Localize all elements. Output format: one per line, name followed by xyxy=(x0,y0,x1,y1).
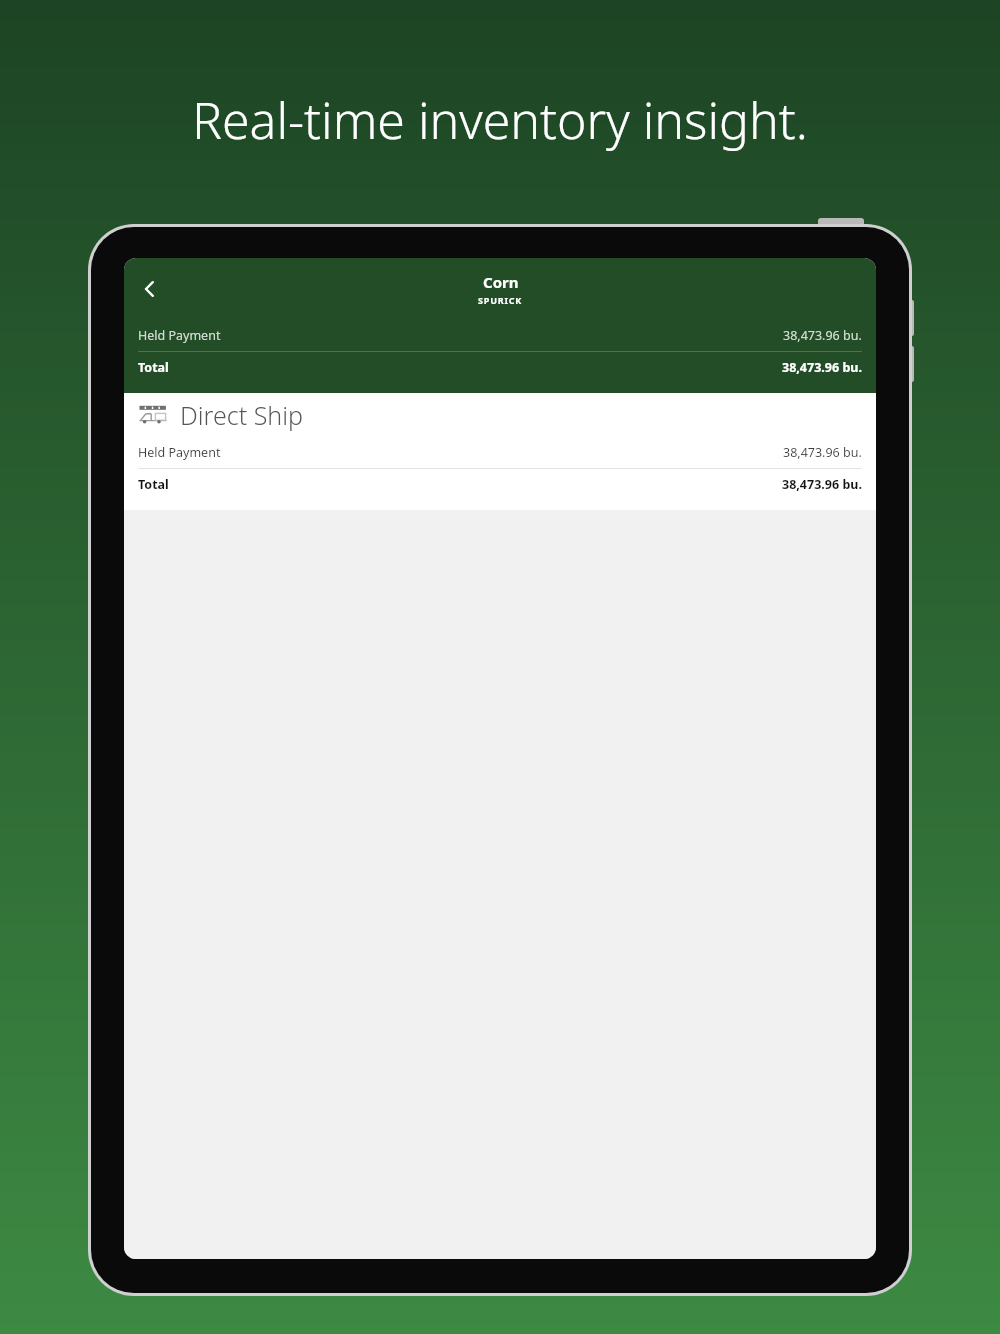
button[interactable]: Total xyxy=(124,469,876,500)
staticText: 38,473.96 bu. xyxy=(783,327,862,344)
staticText: 38,473.96 bu. xyxy=(782,476,862,493)
staticText: SPURICK xyxy=(478,294,523,306)
button[interactable]: Held Payment xyxy=(124,437,876,468)
staticText: Corn xyxy=(483,272,519,292)
staticText: Held Payment xyxy=(138,327,221,344)
staticText: Held Payment xyxy=(138,444,221,461)
staticText: 38,473.96 bu. xyxy=(782,359,862,376)
staticText: Real-time inventory insight. xyxy=(0,86,1000,154)
button[interactable]: Total xyxy=(124,352,876,383)
button[interactable]: Back xyxy=(128,267,172,311)
staticText: Total xyxy=(138,476,169,493)
staticText: Direct Ship xyxy=(180,398,303,432)
button[interactable]: Held Payment xyxy=(124,320,876,351)
staticText: 38,473.96 bu. xyxy=(783,444,862,461)
staticText: Total xyxy=(138,359,169,376)
button[interactable]: Direct Ship xyxy=(124,393,876,437)
